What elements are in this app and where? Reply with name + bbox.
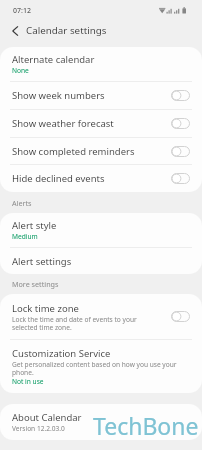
staticText: About Calendar: [12, 411, 82, 424]
button[interactable]: Alert settings: [0, 248, 202, 274]
staticText: Lock time zone: [12, 302, 79, 315]
staticText: Get personalized content based on how yo…: [12, 360, 190, 377]
staticText: Alerts: [12, 198, 32, 208]
staticText: Show completed reminders: [12, 145, 135, 158]
staticText: Alert settings: [12, 255, 72, 268]
staticText: Hide declined events: [12, 172, 105, 185]
button[interactable]: Alert style: [0, 213, 202, 247]
staticText: Customization Service: [12, 347, 111, 360]
button[interactable]: Show weather forecast: [0, 110, 202, 137]
button[interactable]: Show completed reminders: [0, 138, 202, 164]
staticText: Calendar settings: [26, 24, 107, 37]
staticText: Version 12.2.03.0: [12, 424, 65, 433]
button[interactable]: About Calendar: [0, 404, 202, 440]
staticText: Not in use: [12, 377, 44, 386]
button[interactable]: Hide declined events: [0, 165, 202, 192]
staticText: Alternate calendar: [12, 53, 95, 66]
staticText: Medium: [12, 232, 38, 241]
staticText: TechBone: [93, 410, 199, 441]
staticText: None: [12, 66, 29, 75]
button[interactable]: Back: [5, 22, 26, 39]
staticText: 07:12: [13, 6, 31, 16]
staticText: More settings: [12, 279, 59, 289]
staticText: Lock the time and date of events to your…: [12, 315, 153, 332]
staticText: Show week numbers: [12, 89, 105, 102]
staticText: Show weather forecast: [12, 117, 114, 130]
button[interactable]: Show week numbers: [0, 82, 202, 109]
button[interactable]: Alternate calendar: [0, 47, 202, 81]
button[interactable]: Customization Service: [0, 340, 202, 393]
staticText: Alert style: [12, 219, 57, 232]
button[interactable]: Lock time zone: [0, 294, 202, 339]
